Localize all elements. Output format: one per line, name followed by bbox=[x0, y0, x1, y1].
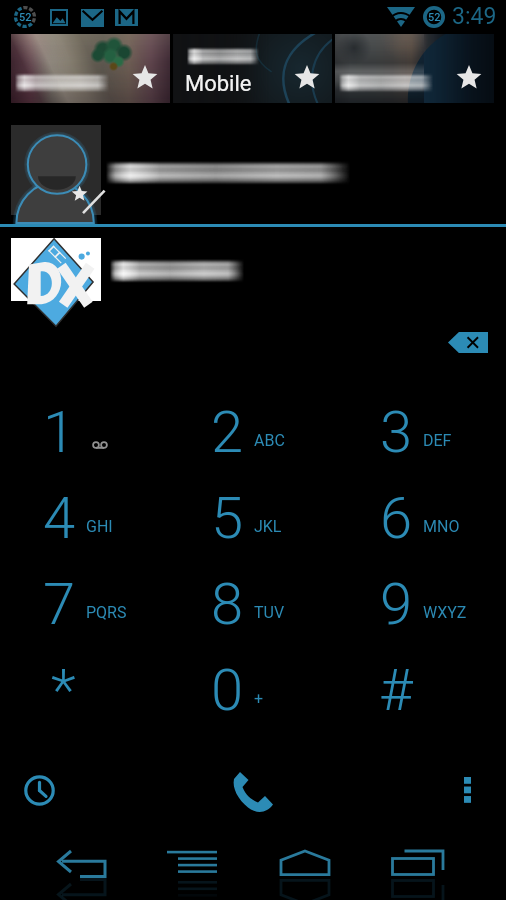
staticText: GHI bbox=[86, 517, 113, 536]
button[interactable] bbox=[0, 110, 506, 224]
button[interactable]: 5 bbox=[168, 473, 337, 559]
staticText: 1 bbox=[43, 398, 76, 466]
staticText: # bbox=[379, 656, 413, 724]
staticText: 8 bbox=[211, 570, 244, 638]
button[interactable]: Recent apps bbox=[381, 845, 451, 900]
button[interactable]: Call history bbox=[9, 760, 69, 820]
button[interactable]: Back bbox=[44, 845, 114, 900]
staticText: JKL bbox=[254, 517, 282, 536]
button[interactable]: 0 bbox=[168, 645, 337, 731]
staticText: ABC bbox=[254, 431, 285, 450]
staticText: * bbox=[51, 656, 76, 724]
staticText: 52 bbox=[428, 11, 441, 24]
button[interactable]: Backspace bbox=[440, 322, 496, 362]
button[interactable]: Home bbox=[269, 845, 339, 900]
staticText: Mobile bbox=[185, 71, 252, 97]
staticText: DEF bbox=[423, 431, 452, 450]
staticText: + bbox=[254, 689, 264, 708]
button[interactable]: * bbox=[0, 645, 168, 731]
staticText: WXYZ bbox=[423, 603, 467, 622]
button[interactable]: 2 bbox=[168, 387, 337, 473]
button[interactable]: 1 bbox=[0, 387, 168, 473]
staticText: 6 bbox=[380, 484, 413, 552]
button[interactable]: Menu bbox=[156, 845, 226, 900]
staticText: TUV bbox=[254, 603, 285, 622]
staticText: 3:49 bbox=[452, 3, 497, 30]
button[interactable]: 3 bbox=[337, 387, 506, 473]
button[interactable]: 6 bbox=[337, 473, 506, 559]
button[interactable]: 8 bbox=[168, 559, 337, 645]
button[interactable]: Call bbox=[218, 756, 288, 826]
staticText: 4 bbox=[43, 484, 76, 552]
button[interactable] bbox=[335, 34, 494, 103]
button[interactable] bbox=[0, 227, 506, 312]
staticText: 0 bbox=[211, 656, 244, 724]
button[interactable]: 7 bbox=[0, 559, 168, 645]
staticText: 7 bbox=[43, 570, 76, 638]
staticText: 9 bbox=[380, 570, 413, 638]
staticText: MNO bbox=[423, 517, 460, 536]
button[interactable] bbox=[11, 34, 170, 103]
button[interactable]: # bbox=[337, 645, 506, 731]
button[interactable]: 9 bbox=[337, 559, 506, 645]
button[interactable]: More options bbox=[437, 761, 497, 821]
button[interactable]: 4 bbox=[0, 473, 168, 559]
staticText: 2 bbox=[211, 398, 244, 466]
staticText: 5 bbox=[211, 484, 244, 552]
staticText: 52 bbox=[19, 11, 32, 24]
staticText: 3 bbox=[380, 398, 413, 466]
staticText: PQRS bbox=[86, 603, 127, 622]
button[interactable]: Mobile bbox=[173, 34, 332, 103]
